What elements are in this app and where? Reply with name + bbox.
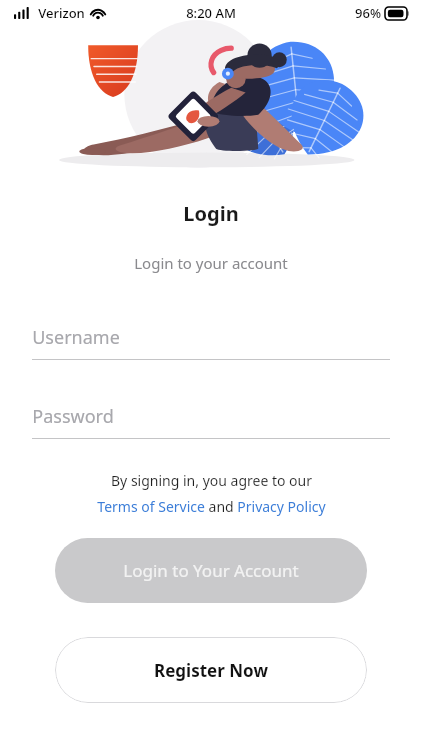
button[interactable]: Password <box>32 404 390 439</box>
button[interactable]: Username <box>32 325 390 360</box>
staticText: Register Now <box>154 659 268 682</box>
button[interactable]: Register Now <box>55 637 367 703</box>
staticText: 96% <box>355 4 381 22</box>
staticText: Login to your account <box>0 253 422 273</box>
staticText: Password <box>32 404 114 429</box>
staticText: Login to Your Account <box>123 559 299 582</box>
staticText: By signing in, you agree to our <box>111 471 312 490</box>
staticText: 8:20 AM <box>186 4 236 22</box>
staticText: Username <box>32 325 120 350</box>
button[interactable]: Login to Your Account <box>55 538 367 603</box>
button[interactable]: Terms of Service and Privacy Policy <box>97 497 326 516</box>
staticText: Verizon <box>38 4 85 22</box>
staticText: Login <box>0 200 422 227</box>
